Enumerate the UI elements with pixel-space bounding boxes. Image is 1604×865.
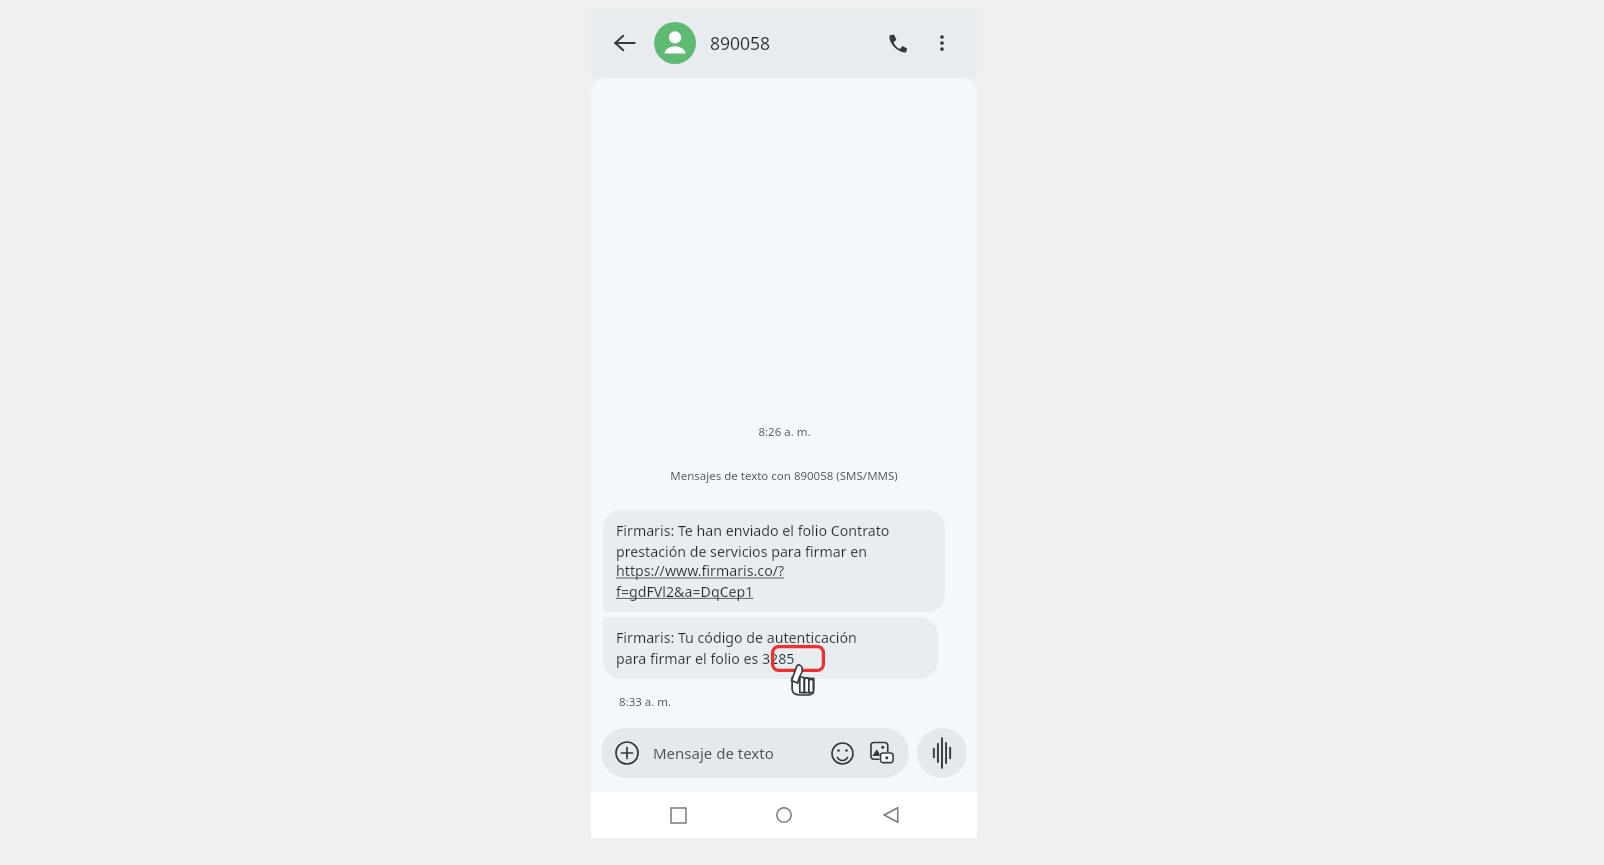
button[interactable]: More options [921, 22, 963, 64]
button[interactable]: Call [877, 22, 919, 64]
button[interactable]: Record audio [917, 728, 967, 778]
staticText: Mensaje de texto [653, 743, 774, 763]
button[interactable]: Back [605, 23, 645, 63]
button[interactable]: Add attachment [601, 728, 909, 778]
button[interactable]: Firmaris: Tu código de autenticación par… [603, 617, 938, 679]
staticText: 8:33 a. m. [619, 694, 672, 710]
staticText: 890058 [710, 31, 771, 55]
staticText: Firmaris: Tu código de autenticación par… [616, 628, 857, 668]
button[interactable]: Firmaris: Te han enviado el folio Contra… [603, 510, 945, 612]
button[interactable]: Back [871, 795, 911, 835]
button[interactable]: 890058 [654, 16, 877, 70]
button[interactable]: Home [764, 795, 804, 835]
button[interactable]: Attach image [867, 738, 897, 768]
staticText: 8:26 a. m. [758, 424, 811, 440]
button[interactable]: Add attachment [613, 739, 641, 767]
button[interactable]: Emoji [827, 738, 857, 768]
staticText: https://www.firmaris.co/? f=gdFVl2&a=DqC… [616, 561, 785, 601]
staticText: Mensajes de texto con 890058 (SMS/MMS) [670, 468, 898, 484]
staticText: Firmaris: Te han enviado el folio Contra… [616, 521, 890, 561]
button[interactable]: Recent apps [658, 795, 698, 835]
